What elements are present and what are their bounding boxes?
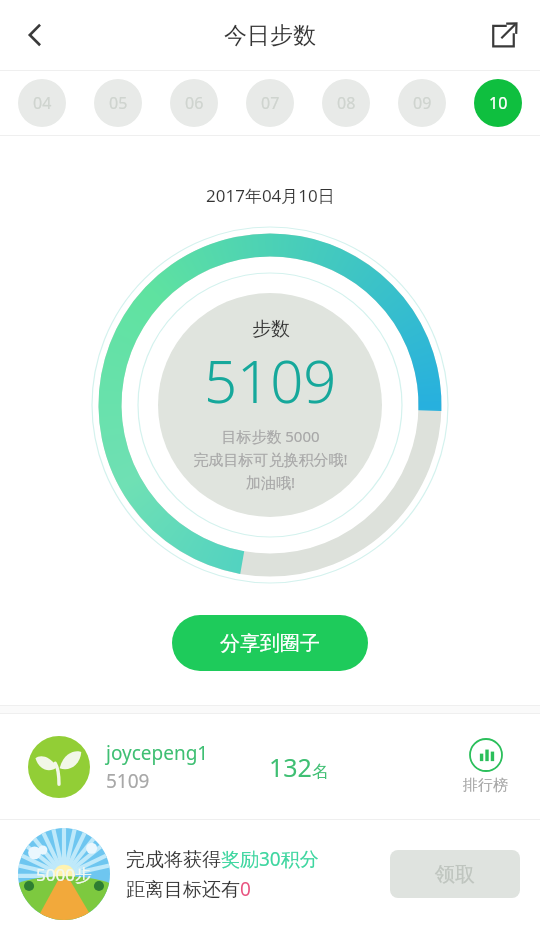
- button[interactable]: 排行榜: [459, 734, 512, 799]
- staticText: 步数: [252, 317, 290, 341]
- staticText: 132名: [269, 750, 329, 784]
- staticText: 今日步数: [224, 21, 316, 50]
- button[interactable]: Back: [8, 8, 62, 62]
- staticText: 07: [261, 92, 280, 114]
- staticText: 排行榜: [463, 776, 508, 795]
- staticText: 完成将获得奖励30积分: [126, 846, 319, 872]
- staticText: 距离目标还有0: [126, 876, 251, 902]
- button[interactable]: 10: [474, 79, 522, 127]
- button[interactable]: 分享到圈子: [172, 615, 368, 671]
- button[interactable]: joycepeng1: [0, 714, 540, 819]
- staticText: 10: [489, 92, 508, 114]
- button[interactable]: 08: [322, 79, 370, 127]
- staticText: 08: [337, 92, 356, 114]
- button[interactable]: Share: [476, 8, 530, 62]
- staticText: 5109: [106, 768, 150, 794]
- button[interactable]: 09: [398, 79, 446, 127]
- staticText: joycepeng1: [106, 740, 209, 766]
- staticText: 分享到圈子: [220, 631, 320, 656]
- button[interactable]: 05: [94, 79, 142, 127]
- staticText: 目标步数 5000 完成目标可兑换积分哦! 加油哦!: [193, 426, 348, 493]
- staticText: 06: [185, 92, 204, 114]
- staticText: 04: [33, 92, 52, 114]
- button[interactable]: 06: [170, 79, 218, 127]
- staticText: 5109: [204, 341, 337, 420]
- button[interactable]: 领取: [390, 850, 520, 898]
- button[interactable]: 04: [18, 79, 66, 127]
- staticText: 05: [109, 92, 128, 114]
- staticText: 2017年04月10日: [206, 184, 335, 207]
- staticText: 5000步: [36, 863, 92, 886]
- staticText: 领取: [435, 862, 475, 887]
- button[interactable]: 07: [246, 79, 294, 127]
- staticText: 09: [413, 92, 432, 114]
